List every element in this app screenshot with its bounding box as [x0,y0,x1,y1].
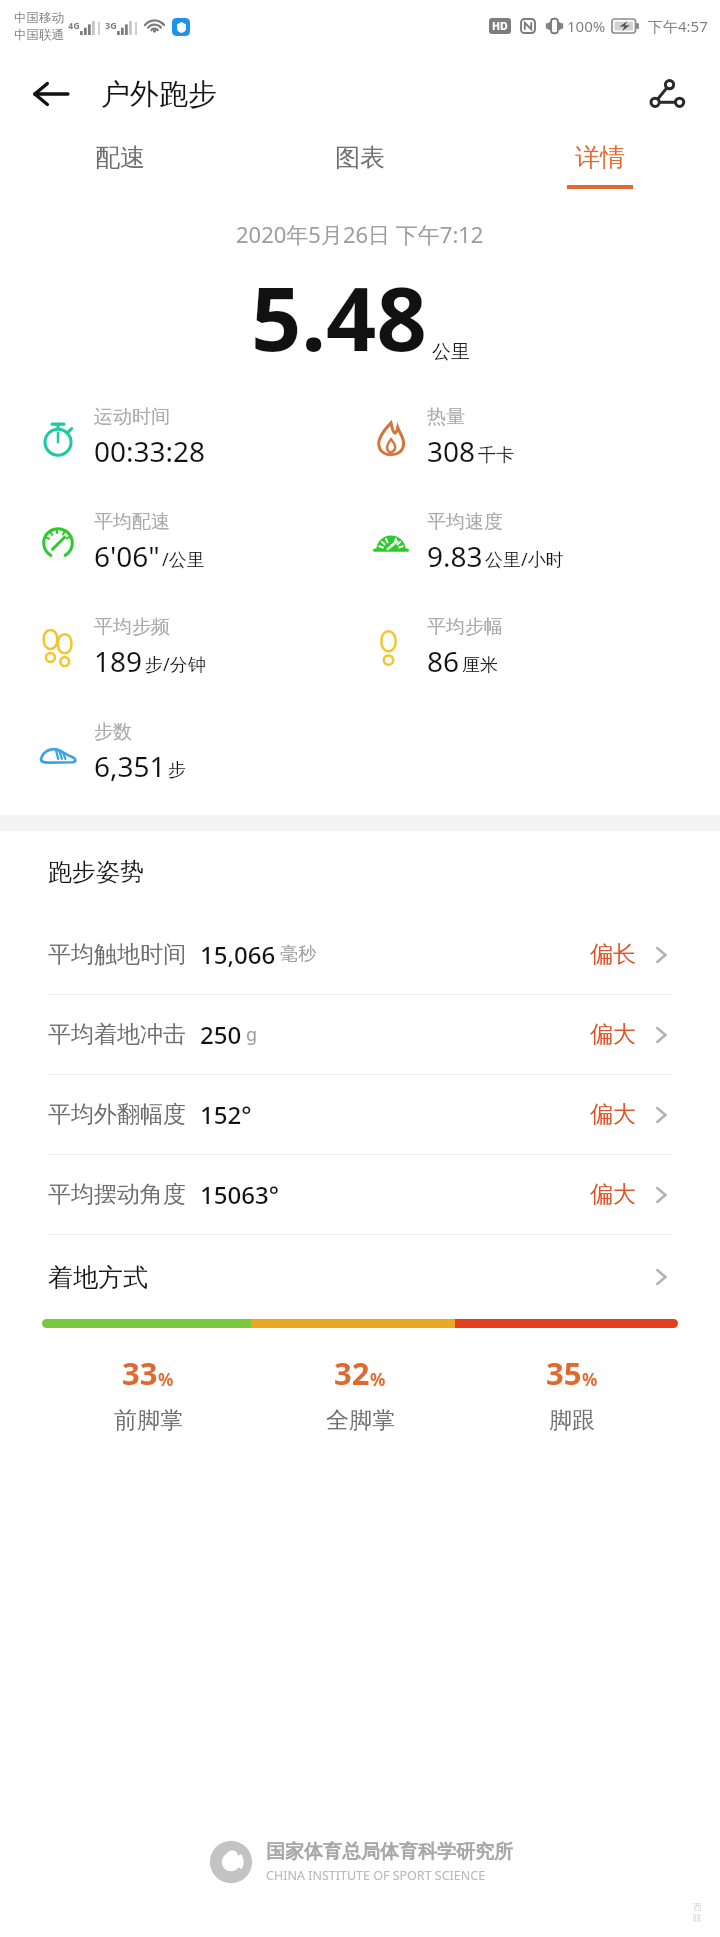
staticText: 32 [334,1352,370,1394]
button[interactable]: 图表 [240,142,480,189]
staticText: 眼 [693,1912,702,1923]
staticText: 千卡 [478,444,514,467]
staticText: 2020年5月26日 下午7:12 [236,219,484,249]
staticText: 189 [94,642,143,680]
button[interactable]: 着地方式 [0,1235,720,1435]
staticText: 35 [546,1352,582,1394]
staticText: 6,351 [94,747,166,785]
staticText: 毫秒 [280,943,316,966]
staticText: 平均速度 [427,510,503,534]
staticText: 中国移动 [14,10,64,26]
staticText: % [370,1368,386,1391]
button[interactable]: 配速 [0,142,240,189]
staticText: 公里/小时 [485,547,564,572]
staticText: HD [492,19,508,33]
staticText: 33 [122,1352,158,1394]
staticText: 3G [105,19,117,31]
button[interactable]: 详情 [480,142,720,189]
staticText: 86 [427,642,460,680]
staticText: 平均着地冲击 [48,1020,186,1049]
staticText: 配速 [95,142,145,173]
staticText: 着地方式 [48,1262,148,1293]
staticText: 15063° [200,1178,279,1211]
staticText: 平均配速 [94,510,170,534]
button[interactable]: 平均触地时间 [0,915,720,994]
staticText: 偏大 [590,1100,636,1129]
staticText: 偏大 [590,1020,636,1049]
staticText: CHINA INSTITUTE OF SPORT SCIENCE [266,1867,486,1884]
staticText: 公里 [432,340,470,364]
staticText: g [246,1022,258,1047]
staticText: 平均触地时间 [48,940,186,969]
staticText: 平均步幅 [427,615,503,639]
staticText: 9.83 [427,537,483,575]
staticText: 步数 [94,720,132,744]
staticText: 308 [427,432,476,470]
staticText: 中国联通 [14,27,64,43]
staticText: 偏长 [590,940,636,969]
staticText: 4G [68,19,80,31]
staticText: 热量 [427,405,465,429]
staticText: 250 [200,1018,242,1051]
staticText: 平均步频 [94,615,170,639]
staticText: 跑步姿势 [48,857,144,887]
staticText: 全脚掌 [326,1406,395,1435]
staticText: 152° [200,1098,252,1131]
staticText: 户外跑步 [101,76,217,113]
staticText: % [158,1368,174,1391]
button[interactable]: 平均配速 [34,510,367,575]
button[interactable]: 步数 [34,720,367,785]
staticText: 6'06" [94,537,160,575]
staticText: 步 [168,759,186,782]
button[interactable]: Back [24,67,78,121]
button[interactable]: 平均速度 [367,510,700,575]
staticText: 西 [693,1901,702,1912]
staticText: 5.48 [251,257,427,377]
staticText: 100% [567,16,606,36]
staticText: 下午4:57 [648,16,708,36]
button[interactable]: 平均外翻幅度 [0,1075,720,1154]
staticText: 厘米 [462,654,498,677]
button[interactable]: 平均步频 [34,615,367,680]
button[interactable]: 热量 [367,405,700,470]
staticText: 平均摆动角度 [48,1180,186,1209]
staticText: 15,066 [200,938,276,971]
button[interactable]: 运动时间 [34,405,367,470]
staticText: 运动时间 [94,405,170,429]
staticText: 详情 [575,142,625,173]
staticText: 平均外翻幅度 [48,1100,186,1129]
staticText: 步/分钟 [145,652,206,677]
staticText: 偏大 [590,1180,636,1209]
button[interactable]: 平均着地冲击 [0,995,720,1074]
button[interactable]: Share [640,67,694,121]
staticText: 国家体育总局体育科学研究所 [266,1840,513,1864]
staticText: 图表 [335,142,385,173]
staticText: 00:33:28 [94,432,206,470]
staticText: 脚跟 [549,1406,595,1435]
button[interactable]: 平均步幅 [367,615,700,680]
staticText: /公里 [162,547,205,572]
button[interactable]: 平均摆动角度 [0,1155,720,1234]
staticText: 前脚掌 [114,1406,183,1435]
staticText: % [582,1368,598,1391]
